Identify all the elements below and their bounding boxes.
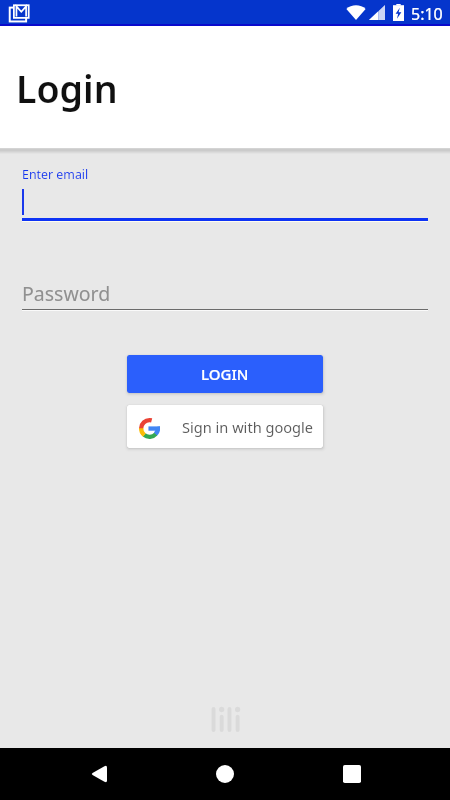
staticText: Login <box>16 63 118 114</box>
button[interactable]: LOGIN <box>127 355 323 393</box>
staticText: 5:10 <box>411 3 443 25</box>
button[interactable]: Enter email <box>22 166 428 222</box>
staticText: Enter email <box>22 166 89 183</box>
button[interactable]: Home <box>201 750 249 798</box>
button[interactable]: Password <box>22 275 428 311</box>
staticText: Sign in with google <box>182 417 314 437</box>
button[interactable]: Recent apps <box>328 750 376 798</box>
staticText: Password <box>22 280 111 307</box>
staticText: LOGIN <box>201 364 249 384</box>
button[interactable]: Back <box>75 750 123 798</box>
button[interactable]: Sign in with google <box>127 405 323 448</box>
